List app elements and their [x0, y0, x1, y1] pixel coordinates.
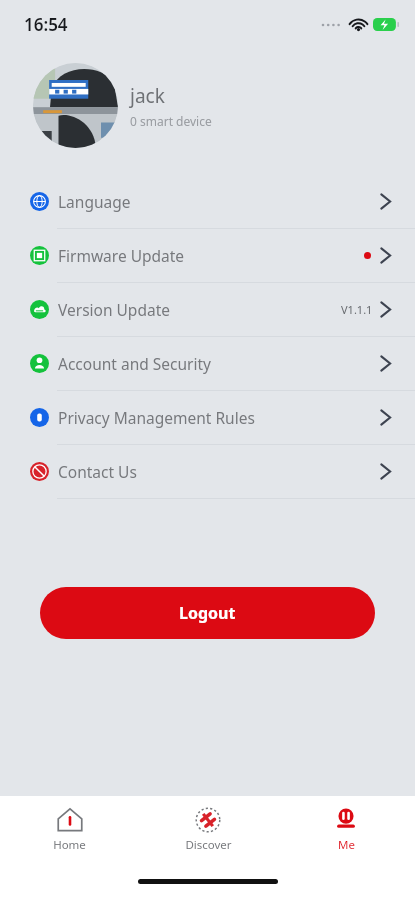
- button[interactable]: Account and Security: [0, 337, 415, 390]
- button[interactable]: Discover: [139, 796, 277, 862]
- button[interactable]: Contact Us: [0, 445, 415, 498]
- staticText: jack: [130, 83, 165, 109]
- staticText: Me: [338, 837, 355, 853]
- staticText: 16:54: [24, 13, 68, 36]
- staticText: Home: [53, 837, 86, 853]
- button[interactable]: Version Update: [0, 283, 415, 336]
- button[interactable]: Firmware Update: [0, 229, 415, 282]
- staticText: Discover: [185, 837, 232, 853]
- staticText: Firmware Update: [58, 245, 185, 266]
- staticText: Account and Security: [58, 353, 211, 374]
- staticText: Logout: [179, 602, 236, 624]
- staticText: Language: [58, 191, 131, 212]
- staticText: 0 smart device: [130, 113, 212, 129]
- staticText: V1.1.1: [341, 302, 373, 317]
- button[interactable]: Home: [0, 796, 139, 862]
- button[interactable]: Privacy Management Rules: [0, 391, 415, 444]
- staticText: Contact Us: [58, 461, 137, 482]
- staticText: Privacy Management Rules: [58, 407, 255, 428]
- button[interactable]: Me: [277, 796, 415, 862]
- button[interactable]: Language: [0, 175, 415, 228]
- button[interactable]: Logout: [40, 587, 375, 639]
- button[interactable]: jack: [33, 58, 415, 153]
- staticText: Version Update: [58, 299, 170, 320]
